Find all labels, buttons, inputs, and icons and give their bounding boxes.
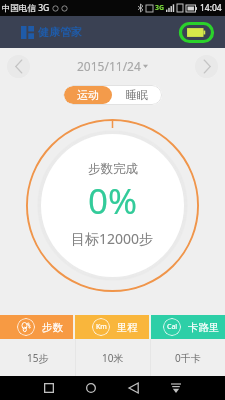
staticText: 卡路里 [188, 321, 220, 334]
button[interactable]: Back [122, 376, 146, 400]
staticText: 步数 [42, 321, 63, 334]
staticText: Cal [167, 322, 178, 332]
button[interactable]: Hide keyboard [164, 376, 188, 400]
staticText: 10米 [102, 351, 124, 365]
staticText: 健康管家 [38, 25, 82, 39]
staticText: 0% [88, 177, 138, 225]
button[interactable]: Previous day [7, 55, 30, 78]
staticText: 目标12000步 [71, 229, 154, 248]
button[interactable]: 睡眠 [112, 86, 161, 104]
staticText: Km [96, 322, 107, 332]
button[interactable]: Recent apps [37, 376, 61, 400]
staticText: 睡眠 [126, 88, 148, 102]
button[interactable]: Km [75, 315, 149, 339]
staticText: 中国电信 3G [2, 2, 50, 14]
staticText: 2015/11/24 [77, 58, 141, 74]
staticText: 步数完成 [88, 161, 138, 177]
button[interactable]: Cal [151, 315, 225, 339]
staticText: 里程 [117, 321, 138, 334]
staticText: 3G [155, 3, 165, 13]
button[interactable]: 步数 [0, 315, 73, 339]
button[interactable]: Home [79, 376, 103, 400]
staticText: 15步 [27, 351, 49, 365]
button[interactable]: Next day [195, 55, 218, 78]
staticText: 14:04 [200, 2, 222, 14]
staticText: 运动 [77, 88, 99, 102]
staticText: 0千卡 [175, 351, 201, 365]
button[interactable]: 运动 [64, 86, 112, 104]
button[interactable]: Device battery [179, 22, 214, 43]
